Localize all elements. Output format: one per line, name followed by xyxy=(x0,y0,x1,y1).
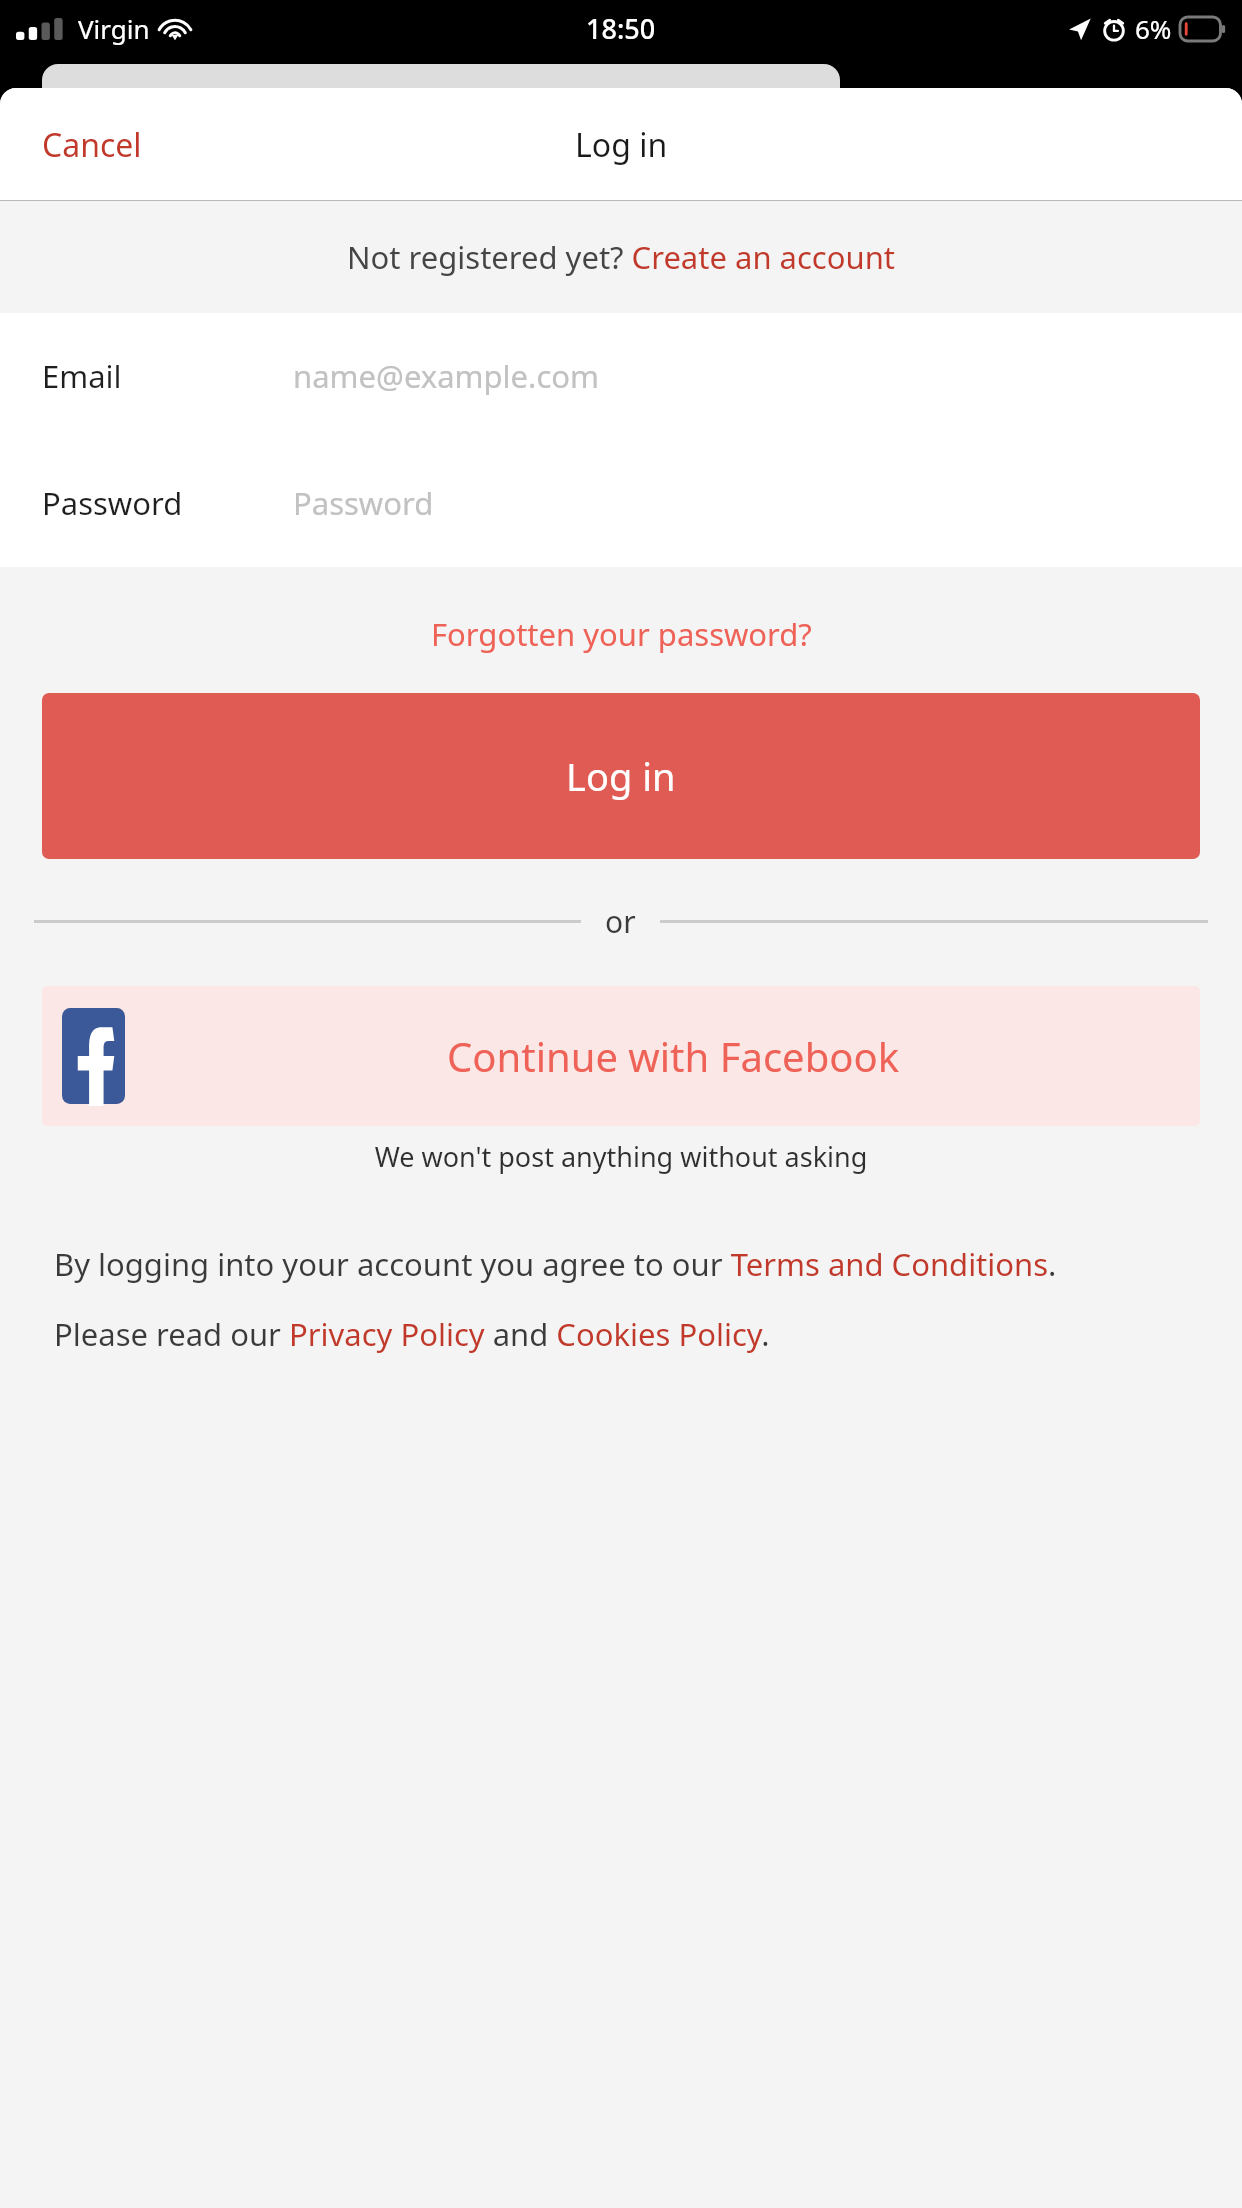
staticText: Email xyxy=(42,355,293,397)
staticText: Cancel xyxy=(42,123,142,167)
staticText: Password xyxy=(42,482,293,524)
staticText: name@example.com xyxy=(293,355,600,397)
staticText: Continue with Facebook xyxy=(447,1029,899,1083)
staticText: 6% xyxy=(1135,11,1172,46)
button[interactable]: Not registered yet? Create an account xyxy=(339,230,904,284)
staticText: Virgin xyxy=(78,11,150,46)
staticText: Log in xyxy=(566,750,676,802)
staticText: Password xyxy=(293,482,434,524)
staticText: We won't post anything without asking xyxy=(0,1138,1242,1175)
staticText: or xyxy=(605,901,636,942)
staticText: Log in xyxy=(575,123,668,167)
button[interactable]: Log in xyxy=(42,693,1200,859)
button[interactable]: By logging into your account you agree t… xyxy=(54,1243,1057,1285)
button[interactable]: Password xyxy=(0,439,1242,567)
button[interactable]: Forgotten your password? xyxy=(421,605,822,663)
staticText: Forgotten your password? xyxy=(431,613,812,655)
staticText: Not registered yet? Create an account xyxy=(347,236,896,278)
staticText: 18:50 xyxy=(586,10,656,47)
button[interactable]: Cancel xyxy=(20,113,164,177)
button[interactable]: Email xyxy=(0,313,1242,439)
button[interactable]: Continue with Facebook xyxy=(42,986,1200,1126)
button[interactable]: Please read our Privacy Policy and Cooki… xyxy=(54,1313,770,1355)
